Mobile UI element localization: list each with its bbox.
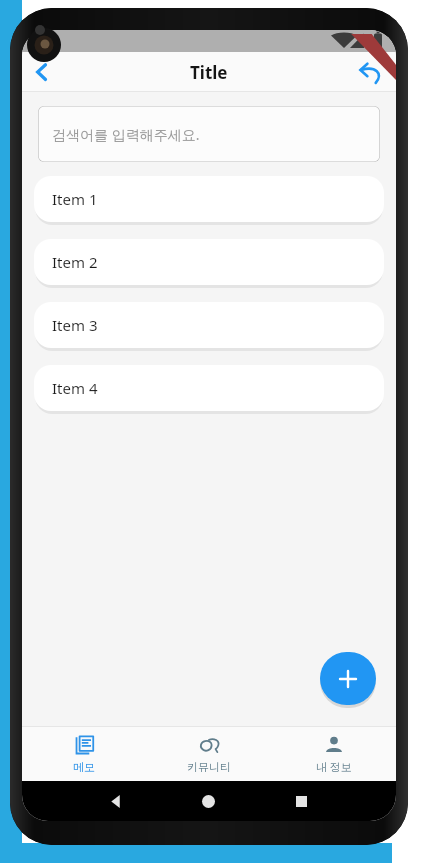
button[interactable]: Back: [70, 781, 162, 821]
button[interactable]: Home: [162, 781, 255, 821]
button[interactable]: Item 4: [34, 365, 384, 411]
staticText: 메모: [73, 760, 95, 774]
staticText: 내 정보: [316, 759, 352, 774]
button[interactable]: Recents: [255, 781, 348, 821]
button[interactable]: Item 1: [34, 176, 384, 222]
button[interactable]: Reply: [350, 52, 390, 92]
staticText: 키뮤니티: [187, 760, 231, 774]
button[interactable]: 검색어를 입력해주세요.: [38, 106, 380, 162]
staticText: Item 2: [52, 252, 98, 272]
button[interactable]: 메모: [22, 727, 146, 781]
staticText: 검색어를 입력해주세요.: [52, 125, 200, 144]
button[interactable]: Item 3: [34, 302, 384, 348]
staticText: Title: [190, 61, 228, 84]
staticText: Item 4: [52, 378, 98, 398]
button[interactable]: 내 정보: [271, 727, 396, 781]
staticText: Item 1: [52, 189, 98, 209]
button[interactable]: 키뮤니티: [146, 727, 271, 781]
button[interactable]: Back: [22, 52, 62, 92]
button[interactable]: Item 2: [34, 239, 384, 285]
staticText: Item 3: [52, 315, 98, 335]
button[interactable]: Add: [320, 652, 376, 705]
